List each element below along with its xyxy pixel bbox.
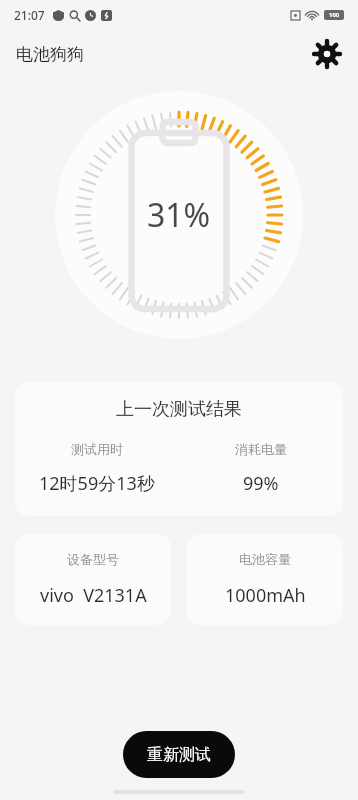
staticText: vivo V2131A bbox=[40, 583, 147, 608]
staticText: 电池容量 bbox=[239, 551, 291, 567]
staticText: 99% bbox=[243, 471, 279, 496]
staticText: 1000mAh bbox=[225, 583, 306, 608]
staticText: 21:07 bbox=[14, 7, 45, 23]
button[interactable]: 上一次测试结果 bbox=[15, 382, 343, 516]
staticText: 12时59分13秒 bbox=[39, 471, 155, 496]
staticText: 电池狗狗 bbox=[16, 44, 84, 65]
staticText: 100 bbox=[329, 11, 340, 19]
staticText: 重新测试 bbox=[147, 745, 211, 765]
button[interactable]: Settings bbox=[310, 37, 344, 71]
staticText: 31% bbox=[147, 193, 211, 237]
staticText: 设备型号 bbox=[67, 551, 119, 567]
button[interactable]: 重新测试 bbox=[123, 731, 235, 778]
button[interactable]: 电池容量 bbox=[187, 534, 343, 625]
staticText: 消耗电量 bbox=[235, 441, 287, 457]
staticText: 测试用时 bbox=[71, 441, 123, 457]
staticText: 上一次测试结果 bbox=[15, 398, 343, 421]
button[interactable]: 设备型号 bbox=[15, 534, 171, 625]
